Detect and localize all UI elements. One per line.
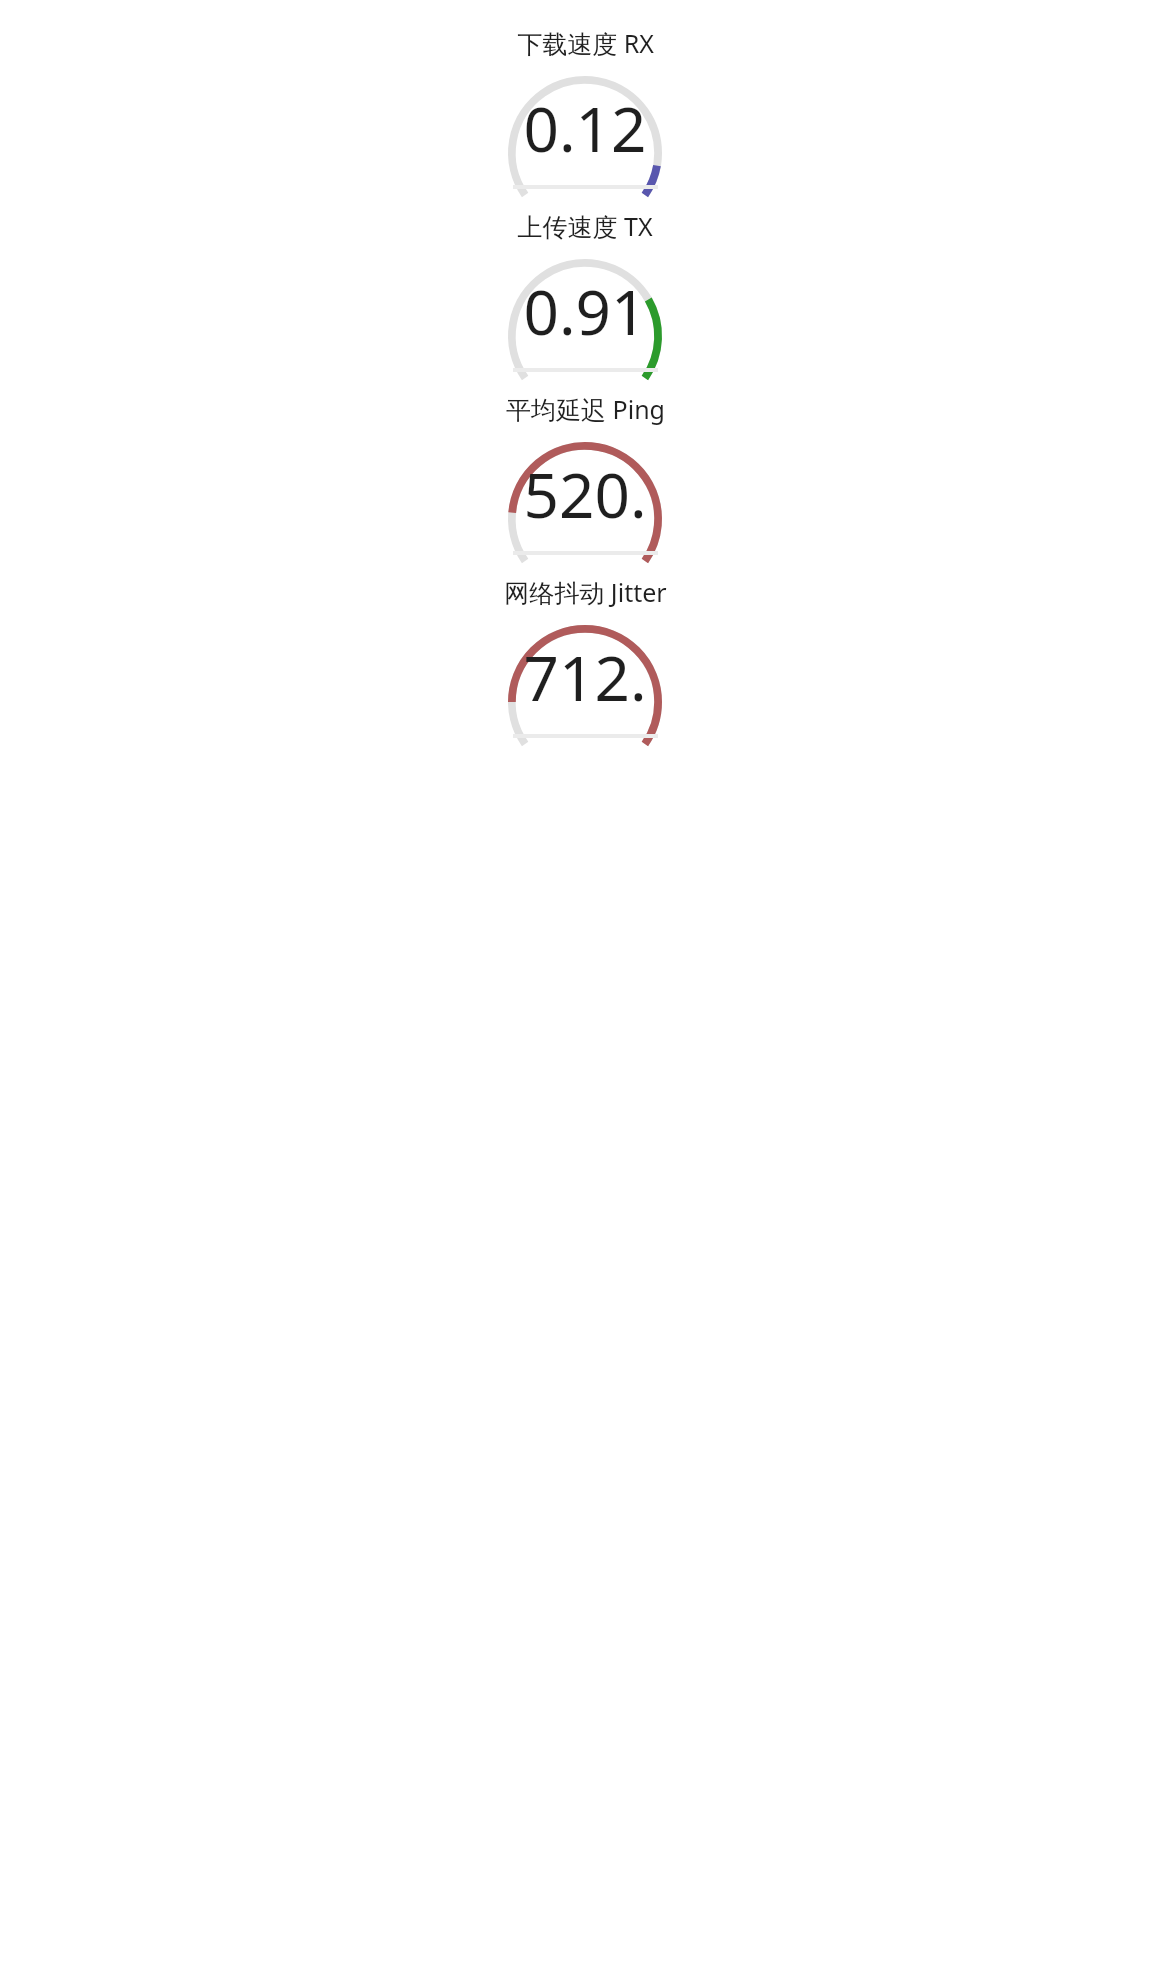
button[interactable]: 平均延迟 Ping bbox=[0, 392, 1170, 555]
staticText: 网络抖动 Jitter bbox=[504, 575, 667, 609]
staticText: 0.91 bbox=[523, 269, 647, 353]
staticText: 平均延迟 Ping bbox=[506, 392, 665, 426]
staticText: 上传速度 TX bbox=[517, 209, 653, 243]
staticText: 下载速度 RX bbox=[517, 26, 654, 60]
staticText: 712.93 bbox=[508, 635, 662, 730]
staticText: 0.12 bbox=[523, 86, 647, 170]
button[interactable]: 下载速度 RX bbox=[0, 26, 1170, 189]
button[interactable]: 网络抖动 Jitter bbox=[0, 575, 1170, 738]
button[interactable]: 上传速度 TX bbox=[0, 209, 1170, 372]
staticText: 520.49 bbox=[508, 452, 662, 547]
